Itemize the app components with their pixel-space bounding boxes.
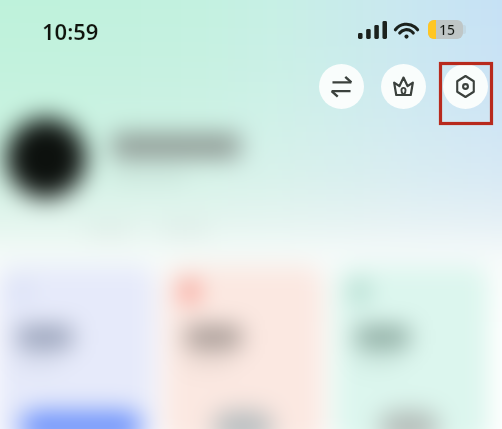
staticText: 15	[439, 20, 456, 39]
button[interactable]	[164, 266, 323, 429]
button[interactable]	[334, 266, 489, 429]
button[interactable]	[379, 411, 439, 429]
button[interactable]	[0, 266, 155, 429]
button[interactable]: Settings	[443, 64, 488, 109]
button[interactable]	[20, 411, 142, 429]
staticText: 10:59	[42, 16, 99, 46]
button[interactable]: Rewards	[381, 64, 426, 109]
button[interactable]	[213, 411, 273, 429]
button[interactable]: Transfer	[319, 64, 364, 109]
